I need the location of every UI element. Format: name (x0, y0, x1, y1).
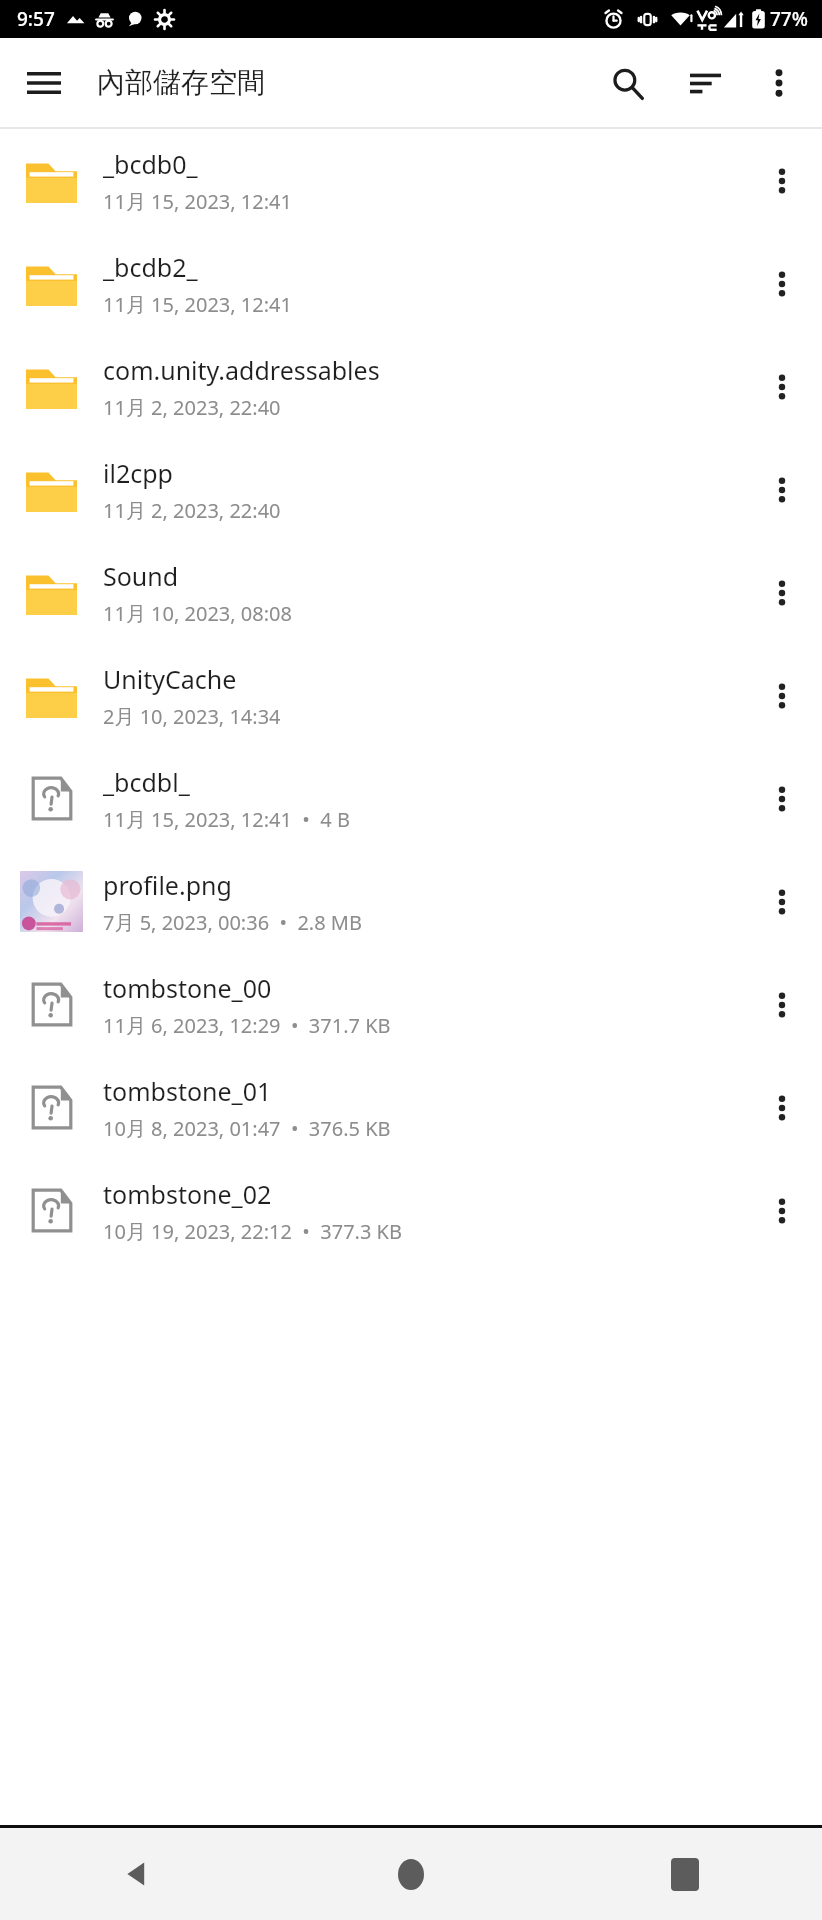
button[interactable]: tombstone_02 (0, 1159, 822, 1262)
staticText: 11月 2, 2023, 22:40 (103, 497, 281, 524)
button[interactable]: _bcdb0_ (0, 129, 822, 232)
staticText: 11月 15, 2023, 12:41 • 4 B (103, 806, 350, 833)
button[interactable]: More options for _bcdb0_ (742, 129, 822, 232)
button[interactable]: UnityCache (0, 644, 822, 747)
button[interactable]: More options for tombstone_02 (742, 1159, 822, 1262)
staticText: tombstone_00 (103, 971, 272, 1005)
staticText: profile.png (103, 868, 232, 902)
staticText: tombstone_02 (103, 1177, 272, 1211)
staticText: 11月 6, 2023, 12:29 • 371.7 KB (103, 1012, 391, 1039)
button[interactable]: _bcdb2_ (0, 232, 822, 335)
staticText: 內部儲存空間 (97, 65, 265, 100)
staticText: 11月 10, 2023, 08:08 (103, 600, 292, 627)
staticText: _bcdbl_ (103, 765, 190, 799)
button[interactable]: More options for Sound (742, 541, 822, 644)
staticText: 9:57 (17, 6, 55, 32)
button[interactable]: More options for tombstone_00 (742, 953, 822, 1056)
staticText: 7月 5, 2023, 00:36 • 2.8 MB (103, 909, 362, 936)
staticText: 11月 2, 2023, 22:40 (103, 394, 281, 421)
button[interactable]: Open navigation drawer (8, 47, 80, 119)
staticText: il2cpp (103, 456, 173, 490)
staticText: 11月 15, 2023, 12:41 (103, 188, 292, 215)
button[interactable]: More options for com.unity.addressables (742, 335, 822, 438)
button[interactable]: More options for UnityCache (742, 644, 822, 747)
staticText: Sound (103, 559, 179, 593)
button[interactable]: _bcdbl_ (0, 747, 822, 850)
button[interactable]: Home (274, 1828, 548, 1920)
button[interactable]: Recent apps (548, 1828, 822, 1920)
button[interactable]: More options for tombstone_01 (742, 1056, 822, 1159)
button[interactable]: More options (746, 50, 812, 116)
staticText: 10月 19, 2023, 22:12 • 377.3 KB (103, 1218, 402, 1245)
button[interactable]: tombstone_00 (0, 953, 822, 1056)
staticText: _bcdb2_ (103, 250, 198, 284)
button[interactable]: More options for profile.png (742, 850, 822, 953)
button[interactable]: More options for _bcdbl_ (742, 747, 822, 850)
button[interactable]: Search (594, 50, 660, 116)
staticText: 77% (770, 6, 808, 32)
button[interactable]: il2cpp (0, 438, 822, 541)
staticText: com.unity.addressables (103, 353, 380, 387)
button[interactable]: More options for _bcdb2_ (742, 232, 822, 335)
button[interactable]: Back (0, 1828, 274, 1920)
button[interactable]: tombstone_01 (0, 1056, 822, 1159)
button[interactable]: Sound (0, 541, 822, 644)
staticText: 2月 10, 2023, 14:34 (103, 703, 281, 730)
button[interactable]: Sort (672, 50, 738, 116)
button[interactable]: com.unity.addressables (0, 335, 822, 438)
staticText: tombstone_01 (103, 1074, 272, 1108)
button[interactable]: profile.png (0, 850, 822, 953)
staticText: 10月 8, 2023, 01:47 • 376.5 KB (103, 1115, 391, 1142)
button[interactable]: More options for il2cpp (742, 438, 822, 541)
staticText: 11月 15, 2023, 12:41 (103, 291, 292, 318)
staticText: UnityCache (103, 662, 237, 696)
staticText: _bcdb0_ (103, 147, 198, 181)
